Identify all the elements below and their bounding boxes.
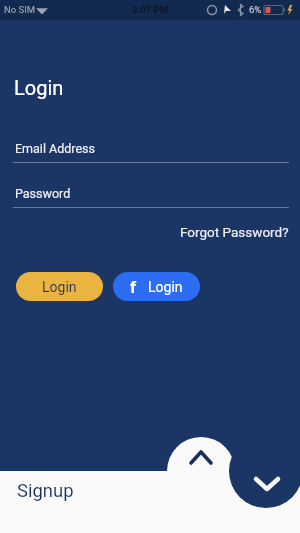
staticText: 3:07 PM (132, 4, 168, 15)
button[interactable] (0, 180, 300, 209)
staticText: Login (42, 279, 77, 295)
staticText: Login (148, 279, 183, 295)
staticText: 6% (249, 4, 262, 15)
button[interactable]: f (113, 272, 200, 301)
button[interactable]: Forgot Password? (180, 224, 289, 240)
staticText: No SIM (4, 4, 36, 15)
staticText: Password (15, 186, 71, 201)
button[interactable] (245, 462, 289, 506)
button[interactable]: Login (16, 272, 103, 301)
staticText: Login (14, 76, 64, 99)
staticText: f (130, 277, 137, 297)
button[interactable] (180, 440, 224, 484)
button[interactable] (0, 134, 300, 164)
button[interactable]: Signup (17, 480, 74, 502)
staticText: Email Address (15, 141, 95, 156)
